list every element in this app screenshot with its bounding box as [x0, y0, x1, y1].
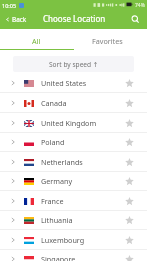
staticText: Sort by speed ↑	[49, 60, 99, 69]
button[interactable]: Favorite	[124, 176, 135, 187]
button[interactable]: United Kingdom	[0, 113, 147, 133]
button[interactable]: Favorite	[124, 215, 135, 226]
button[interactable]: Favorite	[124, 254, 135, 261]
button[interactable]: Favorites	[73, 29, 147, 50]
staticText: 10:05	[2, 2, 17, 9]
button[interactable]: Favorite	[124, 78, 135, 89]
staticText: 74%	[135, 2, 145, 9]
button[interactable]: Back	[5, 10, 27, 29]
button[interactable]: Favorite	[124, 235, 135, 246]
button[interactable]: Sort by speed ↑	[13, 56, 134, 72]
button[interactable]: Favorite	[124, 196, 135, 207]
staticText: Netherlands	[41, 157, 83, 167]
button[interactable]: Favorite	[124, 137, 135, 148]
staticText: All	[32, 36, 41, 46]
button[interactable]: Favorite	[124, 98, 135, 109]
staticText: United Kingdom	[41, 118, 97, 128]
button[interactable]: Lithuania	[0, 210, 147, 230]
button[interactable]: France	[0, 191, 147, 211]
button[interactable]: Favorite	[124, 157, 135, 168]
staticText: Poland	[41, 137, 65, 147]
button[interactable]: Favorite	[124, 118, 135, 129]
button[interactable]: Poland	[0, 132, 147, 152]
button[interactable]: Singapore	[0, 249, 147, 261]
button[interactable]: Luxembourg	[0, 230, 147, 250]
staticText: Choose Location	[43, 13, 106, 24]
staticText: United States	[41, 78, 87, 88]
button[interactable]: Search	[126, 10, 145, 29]
button[interactable]: Canada	[0, 93, 147, 113]
staticText: Canada	[41, 98, 67, 108]
staticText: Lithuania	[41, 215, 73, 225]
button[interactable]: All	[0, 29, 73, 50]
button[interactable]: United States	[0, 73, 147, 93]
staticText: Luxembourg	[41, 235, 85, 245]
staticText: Germany	[41, 176, 73, 186]
staticText: Singapore	[41, 254, 76, 261]
staticText: Favorites	[92, 36, 123, 46]
staticText: France	[41, 196, 64, 206]
staticText: Back	[12, 15, 27, 24]
button[interactable]: Netherlands	[0, 152, 147, 172]
button[interactable]: Germany	[0, 171, 147, 191]
